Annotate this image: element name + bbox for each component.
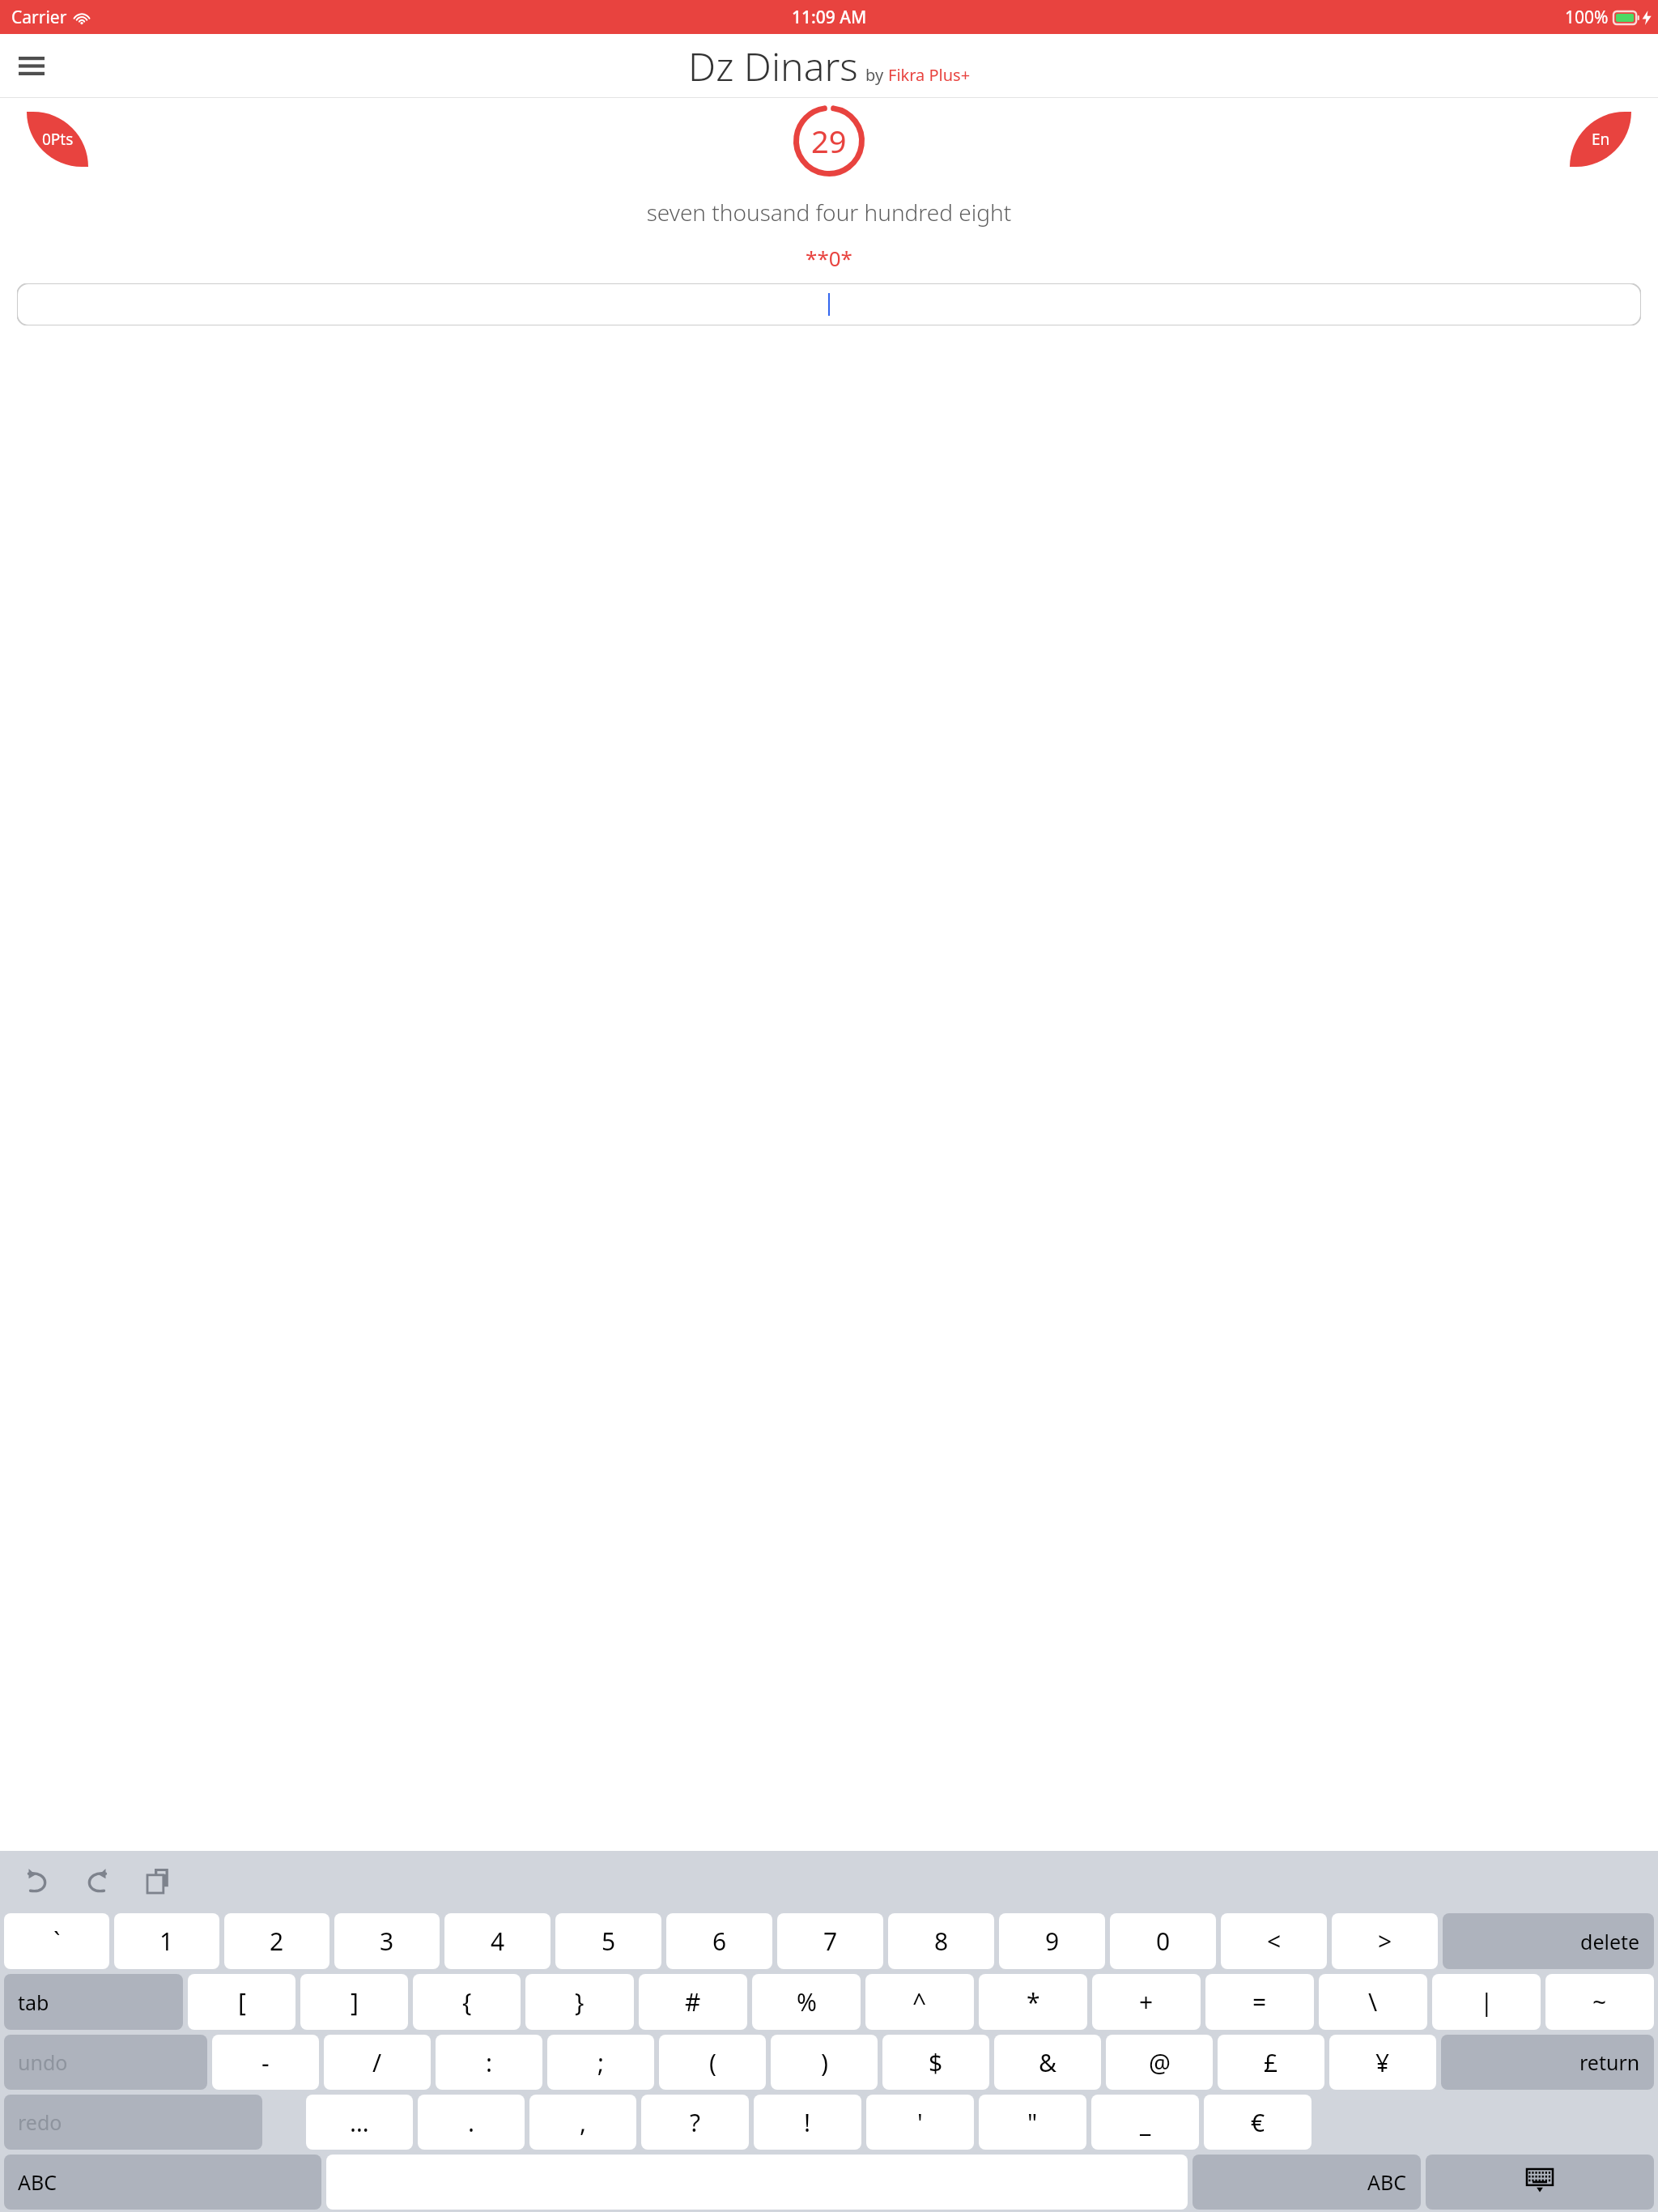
button[interactable]: ( — [659, 2035, 766, 2090]
button[interactable]: redo — [4, 2095, 262, 2150]
button[interactable]: _ — [1091, 2095, 1199, 2150]
staticText: \ — [1368, 1985, 1378, 2018]
staticText: 100% — [1565, 6, 1609, 29]
button[interactable]: * — [979, 1974, 1087, 2030]
staticText: # — [685, 1985, 701, 2018]
button[interactable]: { — [413, 1974, 521, 2030]
staticText: " — [1027, 2106, 1038, 2139]
button[interactable]: Timer — [793, 105, 865, 177]
staticText: + — [1139, 1985, 1154, 2018]
button[interactable]: & — [994, 2035, 1101, 2090]
button[interactable]: # — [639, 1974, 747, 2030]
button[interactable]: return — [1441, 2035, 1654, 2090]
button[interactable]: Menu — [6, 40, 57, 91]
button[interactable]: € — [1204, 2095, 1312, 2150]
staticText: | — [1480, 1985, 1494, 2018]
button[interactable]: 8 — [888, 1913, 994, 1969]
button[interactable]: > — [1332, 1913, 1438, 1969]
staticText: … — [350, 2106, 369, 2139]
staticText: ` — [53, 1925, 61, 1958]
button[interactable]: 0 — [1110, 1913, 1216, 1969]
staticText: € — [1251, 2106, 1265, 2139]
button[interactable]: 4 — [444, 1913, 551, 1969]
staticText: ; — [597, 2046, 605, 2079]
staticText: 9 — [1045, 1925, 1060, 1958]
button[interactable]: ) — [771, 2035, 878, 2090]
button[interactable]: ¥ — [1329, 2035, 1436, 2090]
staticText: _ — [1140, 2106, 1151, 2139]
staticText: ! — [804, 2106, 811, 2139]
staticText: Carrier — [11, 6, 67, 29]
staticText: 7 — [823, 1925, 838, 1958]
button[interactable]: En — [1570, 112, 1631, 167]
button[interactable]: 7 — [777, 1913, 883, 1969]
button[interactable]: 2 — [224, 1913, 329, 1969]
button[interactable]: - — [212, 2035, 319, 2090]
staticText: 2 — [270, 1925, 284, 1958]
button[interactable]: tab — [4, 1974, 183, 2030]
button[interactable]: < — [1221, 1913, 1327, 1969]
button[interactable] — [17, 283, 1641, 325]
button[interactable]: @ — [1106, 2035, 1213, 2090]
button[interactable]: Hide keyboard — [1426, 2155, 1654, 2210]
staticText: @ — [1149, 2046, 1171, 2079]
staticText: , — [580, 2106, 587, 2139]
button[interactable]: ? — [641, 2095, 749, 2150]
button[interactable]: ! — [754, 2095, 861, 2150]
button[interactable]: … — [306, 2095, 413, 2150]
button[interactable]: + — [1092, 1974, 1201, 2030]
button[interactable]: ' — [866, 2095, 974, 2150]
staticText: delete — [1580, 1928, 1640, 1955]
staticText: tab — [18, 1989, 49, 2016]
button[interactable]: ] — [300, 1974, 408, 2030]
button[interactable]: 1 — [114, 1913, 219, 1969]
button[interactable]: Redo — [73, 1856, 123, 1906]
staticText: ~ — [1592, 1985, 1607, 2018]
staticText: % — [797, 1985, 817, 2018]
button[interactable]: Paste — [134, 1856, 185, 1906]
staticText: * — [1027, 1985, 1040, 2018]
button[interactable]: undo — [4, 2035, 207, 2090]
staticText: return — [1579, 2048, 1640, 2076]
staticText: 3 — [380, 1925, 394, 1958]
other: Hide keyboard — [1426, 2155, 1654, 2210]
button[interactable]: | — [1432, 1974, 1541, 2030]
button[interactable]: . — [418, 2095, 525, 2150]
button[interactable]: ~ — [1545, 1974, 1654, 2030]
button[interactable]: \ — [1319, 1974, 1427, 2030]
button[interactable]: ; — [547, 2035, 654, 2090]
staticText: 0Pts — [42, 129, 74, 150]
staticText: En — [1592, 129, 1610, 150]
button[interactable]: : — [436, 2035, 542, 2090]
staticText: redo — [18, 2108, 62, 2136]
button[interactable]: ABC — [1192, 2155, 1421, 2210]
button[interactable]: / — [324, 2035, 431, 2090]
staticText: ( — [709, 2046, 716, 2079]
button[interactable]: ^ — [865, 1974, 974, 2030]
button[interactable]: 9 — [999, 1913, 1105, 1969]
staticText: & — [1039, 2046, 1056, 2079]
button[interactable]: , — [529, 2095, 636, 2150]
button[interactable]: 6 — [666, 1913, 772, 1969]
button[interactable]: delete — [1443, 1913, 1654, 1969]
button[interactable]: Undo — [11, 1856, 62, 1906]
button[interactable]: $ — [882, 2035, 989, 2090]
button[interactable]: 0Pts — [27, 112, 88, 167]
button[interactable]: 5 — [555, 1913, 661, 1969]
button[interactable]: ` — [4, 1913, 109, 1969]
button[interactable]: } — [525, 1974, 634, 2030]
staticText: < — [1267, 1925, 1282, 1958]
staticText: ) — [821, 2046, 828, 2079]
staticText: ' — [917, 2106, 923, 2139]
button[interactable]: " — [979, 2095, 1086, 2150]
staticText: undo — [18, 2048, 68, 2076]
button[interactable]: ABC — [4, 2155, 321, 2210]
button[interactable]: = — [1205, 1974, 1314, 2030]
button[interactable]: [ — [188, 1974, 295, 2030]
button[interactable]: % — [752, 1974, 861, 2030]
staticText: / — [372, 2046, 382, 2079]
staticText: 4 — [491, 1925, 505, 1958]
button[interactable]: £ — [1218, 2035, 1324, 2090]
button[interactable]: 3 — [334, 1913, 440, 1969]
